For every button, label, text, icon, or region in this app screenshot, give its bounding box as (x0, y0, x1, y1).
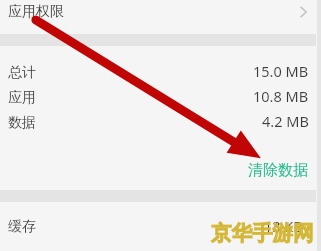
button[interactable]: 清除数据 (246, 158, 316, 182)
staticText: 10.8 MB (253, 86, 309, 106)
staticText: 京华手游网 (211, 220, 314, 246)
staticText: 应用权限 (8, 3, 64, 21)
button[interactable]: 数据 (0, 112, 316, 137)
other: Open app permissions (298, 5, 310, 17)
staticText: 数据 (8, 114, 36, 132)
staticText: 15.0 MB (253, 61, 309, 81)
staticText: 缓存 (8, 218, 36, 236)
staticText: 4.2 MB (262, 111, 309, 131)
staticText: 清除数据 (248, 161, 308, 179)
button[interactable]: 应用权限 (0, 0, 316, 34)
button[interactable]: 总计 (0, 62, 316, 87)
button[interactable]: 缓存 (0, 214, 316, 240)
staticText: 13 KB (264, 216, 303, 236)
staticText: 总计 (8, 64, 36, 82)
staticText: 应用 (8, 89, 36, 107)
button[interactable]: 应用 (0, 87, 316, 112)
